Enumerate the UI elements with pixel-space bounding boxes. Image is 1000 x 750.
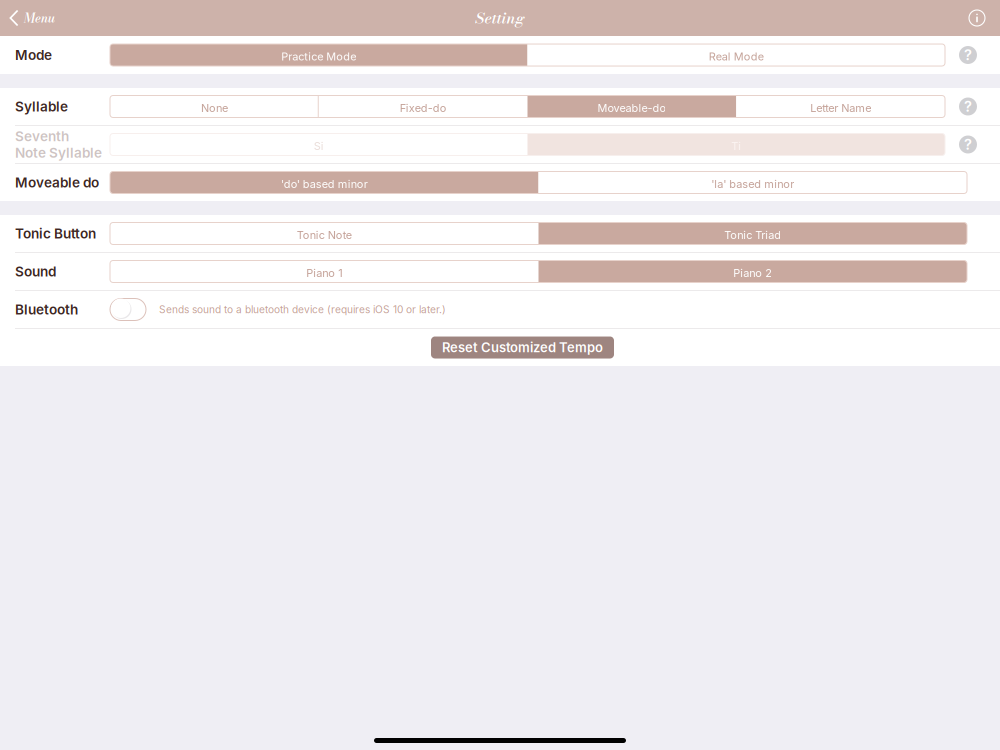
button[interactable]: Help xyxy=(945,91,1000,121)
button[interactable]: Fixed-do xyxy=(319,95,528,117)
staticText: Reset Customized Tempo xyxy=(442,340,603,355)
button[interactable]: Tonic Note xyxy=(110,222,538,244)
staticText: ? xyxy=(964,136,972,153)
staticText: Setting xyxy=(475,6,524,30)
button[interactable]: Letter Name xyxy=(736,95,945,117)
button[interactable]: Menu xyxy=(0,0,69,36)
button[interactable]: 'do' based minor xyxy=(110,171,538,193)
button[interactable]: Piano 2 xyxy=(538,260,967,282)
staticText: Sends sound to a bluetooth device (requi… xyxy=(159,303,446,316)
staticText: Sound xyxy=(15,263,56,280)
button[interactable]: Tonic Triad xyxy=(538,222,967,244)
button[interactable]: Si xyxy=(110,133,527,155)
staticText: ? xyxy=(964,98,972,115)
button[interactable]: Reset Customized Tempo xyxy=(431,336,614,358)
button[interactable]: Real Mode xyxy=(527,44,945,66)
staticText: Practice Mode xyxy=(281,50,356,63)
button[interactable]: Help xyxy=(945,40,1000,70)
button[interactable]: 'la' based minor xyxy=(538,171,967,193)
staticText: 'la' based minor xyxy=(711,177,794,191)
staticText: Moveable-do xyxy=(597,101,666,115)
staticText: Letter Name xyxy=(810,101,871,115)
staticText: Tonic Button xyxy=(15,225,96,242)
staticText: Si xyxy=(314,139,324,153)
staticText: Piano 2 xyxy=(733,266,772,280)
button[interactable]: Piano 1 xyxy=(110,260,538,282)
staticText: Tonic Triad xyxy=(724,228,781,242)
staticText: Syllable xyxy=(15,98,68,115)
button[interactable]: Practice Mode xyxy=(110,44,527,66)
staticText: Tonic Note xyxy=(297,228,352,242)
button[interactable]: Information xyxy=(954,0,1000,36)
staticText: Bluetooth xyxy=(15,301,78,318)
staticText: Note Syllable xyxy=(15,144,102,161)
staticText: Piano 1 xyxy=(306,266,342,280)
staticText: Fixed-do xyxy=(400,101,447,115)
staticText: Menu xyxy=(24,9,55,27)
staticText: Real Mode xyxy=(709,50,764,63)
staticText: None xyxy=(201,101,228,115)
staticText: Moveable do xyxy=(15,174,99,191)
button[interactable]: Bluetooth xyxy=(110,298,146,320)
button[interactable]: Help xyxy=(945,129,1000,159)
staticText: Seventh xyxy=(15,128,69,144)
staticText: Ti xyxy=(731,139,741,153)
staticText: 'do' based minor xyxy=(281,177,368,191)
staticText: ? xyxy=(964,46,972,64)
staticText: Mode xyxy=(15,47,52,63)
button[interactable]: None xyxy=(110,95,319,117)
button[interactable]: Moveable-do xyxy=(527,95,736,117)
